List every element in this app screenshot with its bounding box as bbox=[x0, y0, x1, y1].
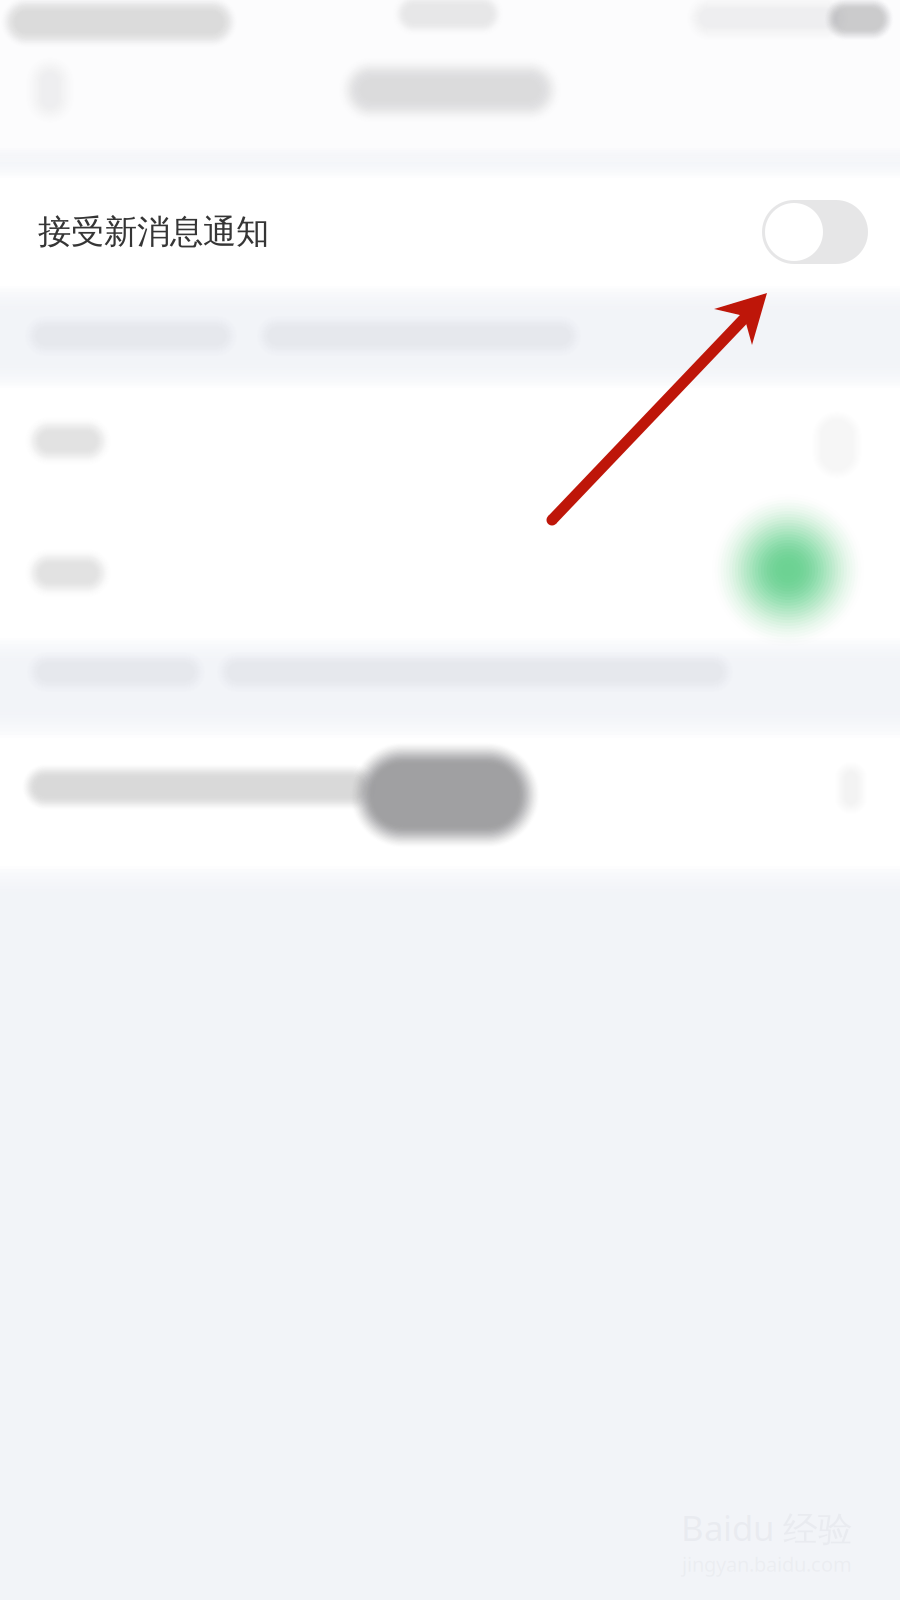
staticText: Baidu 经验 bbox=[681, 1505, 853, 1551]
staticText: 接受新消息通知 bbox=[38, 211, 269, 252]
button[interactable]: 接受新消息通知 bbox=[0, 176, 900, 288]
